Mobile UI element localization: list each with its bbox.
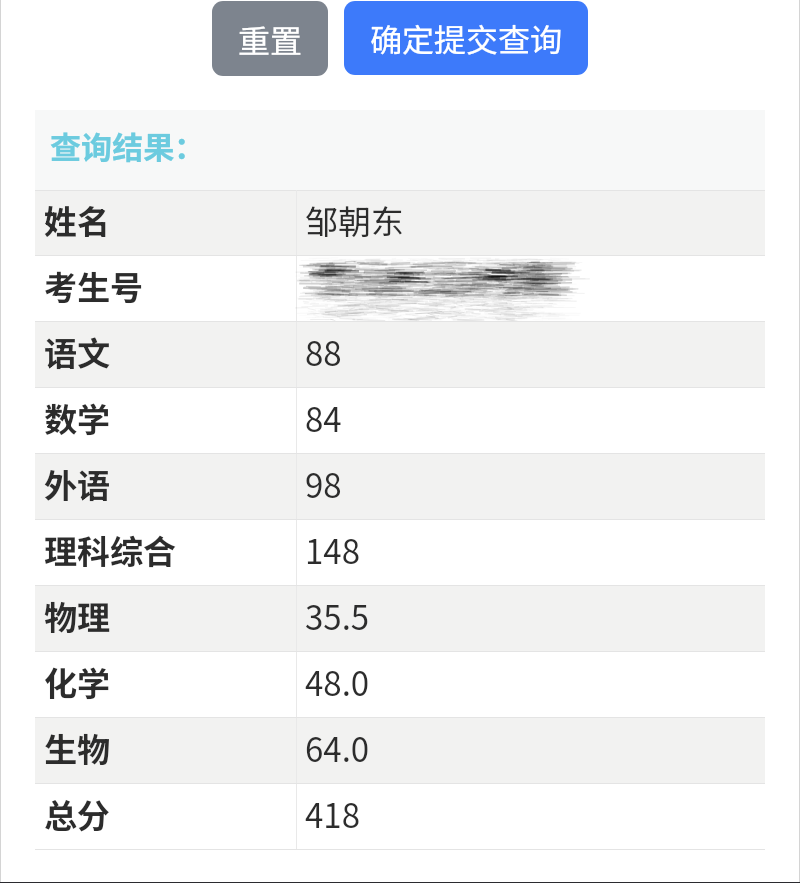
staticText: 确定提交查询 bbox=[370, 15, 563, 61]
staticText: 35.5 bbox=[305, 592, 370, 640]
staticText: 148 bbox=[305, 526, 360, 574]
button[interactable]: 重置 bbox=[212, 1, 328, 76]
staticText: 88 bbox=[305, 328, 342, 376]
button[interactable]: 理科综合 bbox=[35, 520, 765, 586]
staticText: 考生号 bbox=[44, 262, 143, 310]
button[interactable]: 确定提交查询 bbox=[344, 1, 588, 75]
staticText: 重置 bbox=[238, 16, 303, 62]
staticText: 84 bbox=[305, 394, 342, 442]
button[interactable]: 总分 bbox=[35, 784, 765, 850]
staticText: 数学 bbox=[44, 394, 110, 442]
staticText: 查询结果： bbox=[50, 123, 205, 168]
button[interactable]: 考生号 bbox=[35, 256, 765, 322]
staticText: 邹朝东 bbox=[305, 196, 404, 244]
staticText: 98 bbox=[305, 460, 342, 508]
button[interactable]: 语文 bbox=[35, 322, 765, 388]
staticText: 物理 bbox=[44, 592, 110, 640]
button[interactable]: 生物 bbox=[35, 718, 765, 784]
staticText: 化学 bbox=[44, 658, 110, 706]
staticText: 48.0 bbox=[305, 658, 370, 706]
staticText: 生物 bbox=[44, 724, 110, 772]
button[interactable]: 外语 bbox=[35, 454, 765, 520]
button[interactable]: 数学 bbox=[35, 388, 765, 454]
staticText: 理科综合 bbox=[44, 526, 176, 574]
staticText: 姓名 bbox=[44, 196, 110, 244]
staticText: 外语 bbox=[44, 460, 110, 508]
staticText: 语文 bbox=[44, 328, 110, 376]
staticText: 418 bbox=[305, 790, 360, 838]
other: 考生号已涂抹隐藏 bbox=[35, 256, 765, 322]
staticText: 64.0 bbox=[305, 724, 370, 772]
button[interactable]: 姓名 bbox=[35, 190, 765, 256]
staticText: 总分 bbox=[44, 790, 110, 838]
button[interactable]: 物理 bbox=[35, 586, 765, 652]
button[interactable]: 化学 bbox=[35, 652, 765, 718]
